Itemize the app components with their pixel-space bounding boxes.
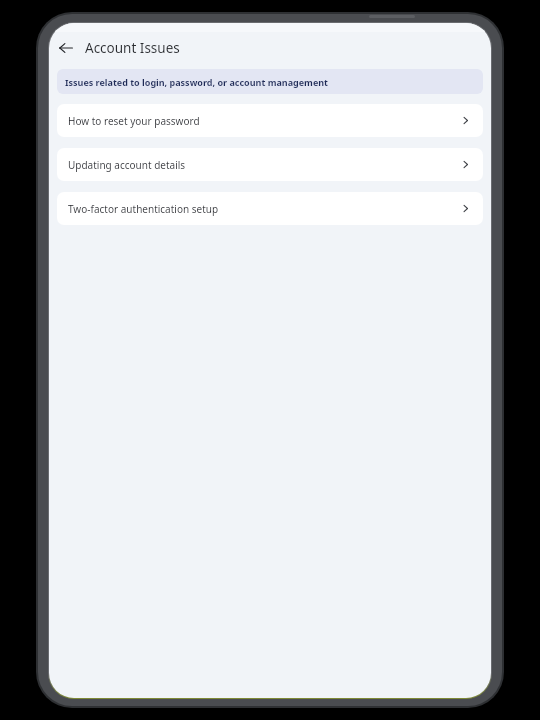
button[interactable]: Two-factor authentication setup <box>57 192 483 225</box>
staticText: Updating account details <box>68 158 186 172</box>
staticText: Account Issues <box>85 39 180 57</box>
button[interactable]: Back <box>52 34 80 62</box>
button[interactable]: Updating account details <box>57 148 483 181</box>
button[interactable]: How to reset your password <box>57 104 483 137</box>
staticText: Two-factor authentication setup <box>68 202 219 216</box>
staticText: Issues related to login, password, or ac… <box>65 76 329 88</box>
staticText: How to reset your password <box>68 114 200 128</box>
